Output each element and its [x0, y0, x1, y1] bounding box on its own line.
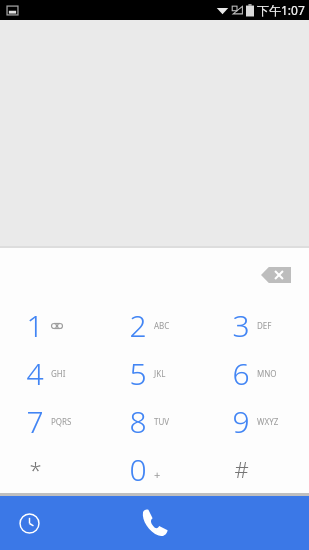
staticText: * — [29, 454, 42, 484]
button[interactable]: # — [206, 445, 309, 493]
staticText: 3 — [232, 305, 250, 346]
button[interactable]: 6 — [206, 349, 309, 397]
staticText: 5 — [129, 353, 147, 394]
button[interactable]: 1 — [0, 302, 103, 349]
button[interactable]: 5 — [103, 349, 206, 397]
button[interactable]: Call — [127, 496, 183, 550]
staticText: TUV — [154, 416, 170, 427]
staticText: 7 — [26, 401, 44, 442]
button[interactable]: 7 — [0, 397, 103, 445]
staticText: GHI — [51, 368, 66, 379]
button[interactable]: 2 — [103, 302, 206, 349]
staticText: 8 — [129, 401, 147, 442]
staticText: 下午1:07 — [257, 2, 305, 18]
staticText: 0 — [129, 449, 147, 490]
button[interactable]: 0 — [103, 445, 206, 493]
staticText: JKL — [154, 368, 166, 379]
button[interactable]: 4 — [0, 349, 103, 397]
staticText: 6 — [232, 353, 250, 394]
button[interactable]: * — [0, 445, 103, 493]
button[interactable]: 3 — [206, 302, 309, 349]
staticText: PQRS — [51, 416, 72, 427]
staticText: MNO — [257, 368, 277, 379]
staticText: 9 — [232, 401, 250, 442]
staticText: 1 — [26, 305, 44, 346]
staticText: DEF — [257, 320, 272, 331]
staticText: ABC — [154, 320, 170, 331]
button[interactable]: Call history — [12, 506, 46, 540]
button[interactable]: 8 — [103, 397, 206, 445]
button[interactable]: Backspace — [259, 263, 293, 287]
staticText: WXYZ — [257, 416, 279, 427]
staticText: 2 — [129, 305, 147, 346]
staticText: # — [234, 454, 249, 484]
button[interactable]: 9 — [206, 397, 309, 445]
staticText: + — [154, 467, 161, 482]
staticText: 4 — [26, 353, 44, 394]
